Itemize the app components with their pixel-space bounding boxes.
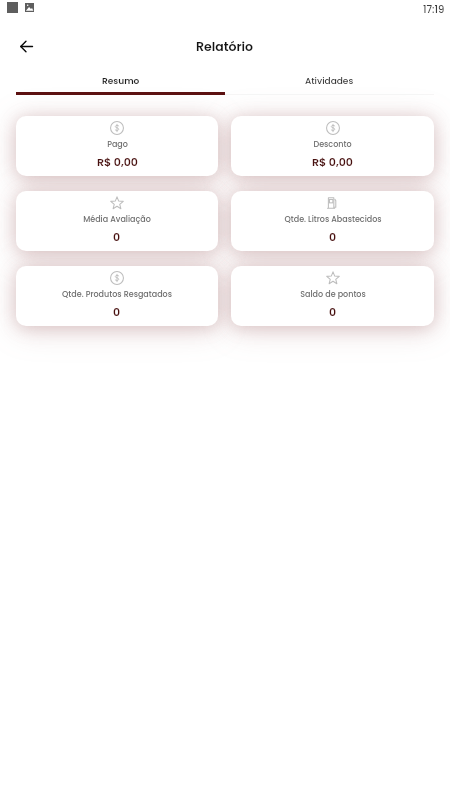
button[interactable]: Qtde. Litros Abastecidos (231, 191, 434, 251)
staticText: 0 (329, 229, 337, 244)
button[interactable]: Saldo de pontos (231, 266, 434, 326)
button[interactable]: Resumo (16, 69, 225, 95)
staticText: R$ 0,00 (97, 154, 138, 169)
button[interactable]: Pago (16, 116, 218, 176)
staticText: Desconto (313, 139, 352, 150)
button[interactable]: Média Avaliação (16, 191, 218, 251)
staticText: Qtde. Litros Abastecidos (284, 214, 382, 225)
button[interactable]: Voltar (9, 30, 43, 64)
staticText: Resumo (102, 75, 140, 88)
staticText: Pago (107, 139, 128, 150)
staticText: Atividades (305, 75, 354, 88)
staticText: 0 (113, 229, 121, 244)
staticText: Relatório (196, 38, 254, 55)
staticText: 0 (113, 304, 121, 319)
button[interactable]: Qtde. Produtos Resgatados (16, 266, 218, 326)
button[interactable]: Atividades (225, 69, 434, 95)
staticText: Saldo de pontos (300, 289, 366, 300)
staticText: 0 (329, 304, 337, 319)
button[interactable]: Desconto (231, 116, 434, 176)
staticText: Média Avaliação (83, 214, 151, 225)
staticText: 17:19 (423, 2, 445, 16)
staticText: Qtde. Produtos Resgatados (62, 289, 172, 300)
staticText: R$ 0,00 (312, 154, 353, 169)
